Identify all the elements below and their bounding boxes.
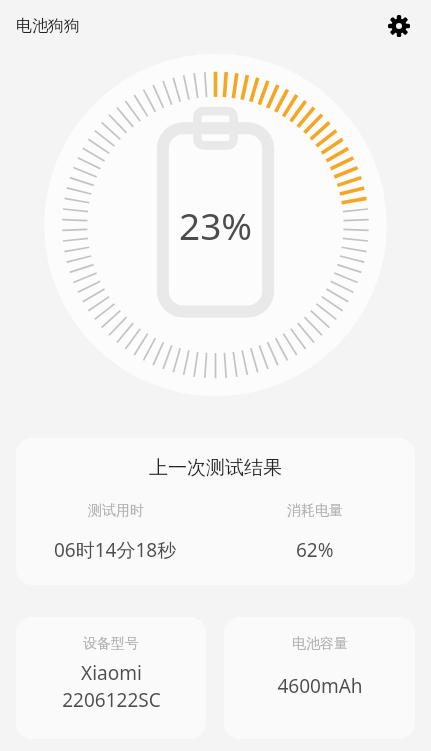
staticText: 23% <box>179 200 253 250</box>
button[interactable]: 上一次测试结果 <box>16 438 415 585</box>
staticText: 06时14分18秒 <box>54 537 177 563</box>
staticText: 电池容量 <box>292 635 348 653</box>
staticText: Xiaomi 2206122SC <box>62 660 161 713</box>
button[interactable]: 电池容量 <box>224 617 415 739</box>
other: Settings <box>388 15 410 37</box>
staticText: 消耗电量 <box>287 502 343 520</box>
staticText: 62% <box>296 537 334 563</box>
staticText: 设备型号 <box>83 635 139 653</box>
button[interactable]: Settings <box>379 6 419 46</box>
staticText: 上一次测试结果 <box>16 456 415 480</box>
staticText: 4600mAh <box>277 673 363 699</box>
staticText: 电池狗狗 <box>16 16 80 36</box>
staticText: 测试用时 <box>88 502 144 520</box>
button[interactable]: 设备型号 <box>16 617 206 739</box>
